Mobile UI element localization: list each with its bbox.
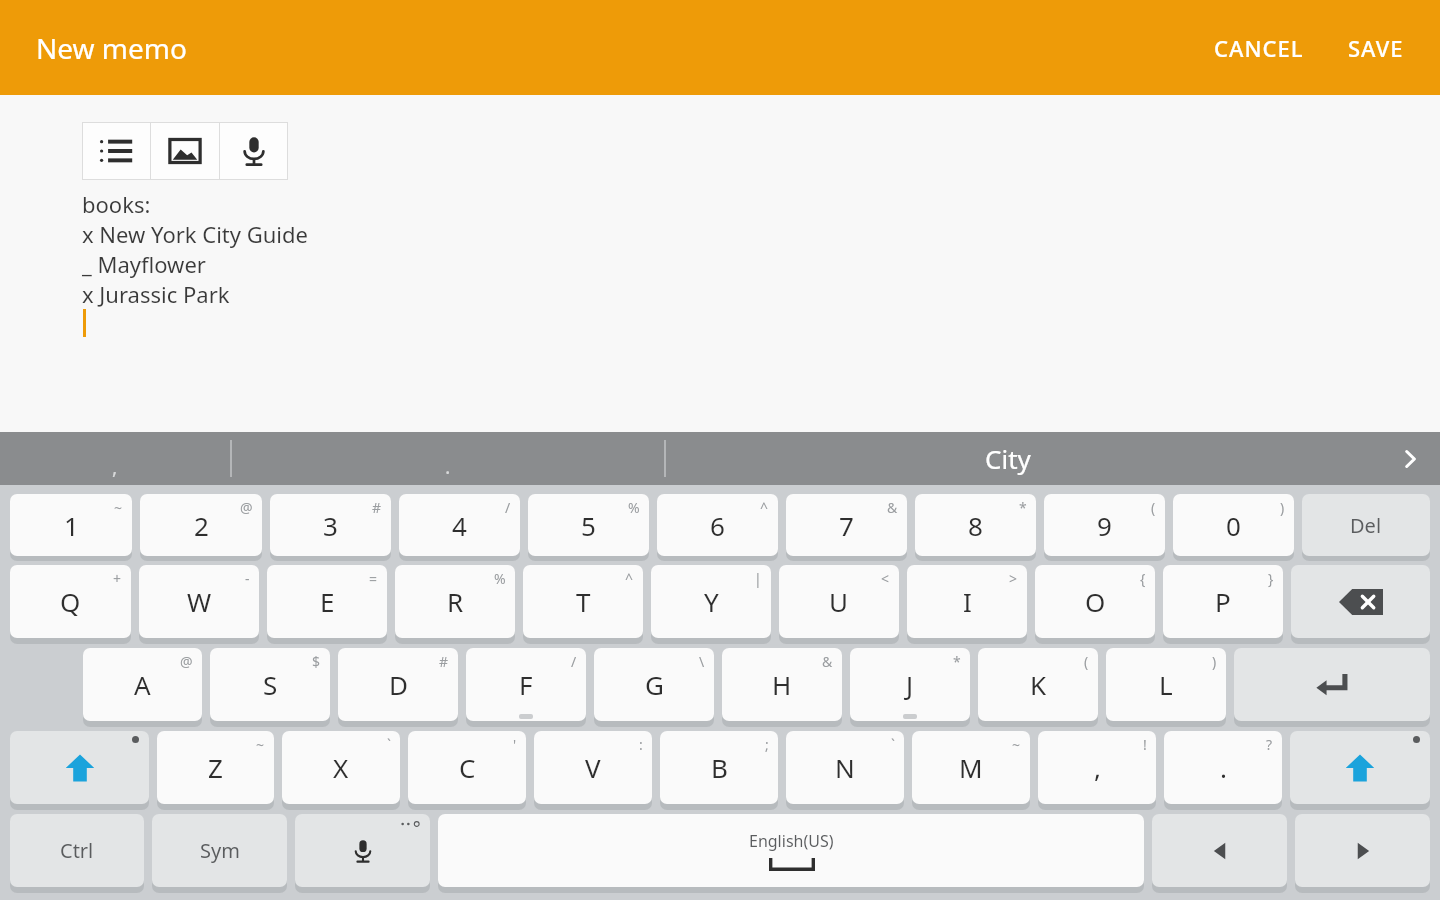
staticText: ; [765, 735, 769, 754]
staticText: S [263, 667, 278, 702]
staticText: x New York City Guide [82, 219, 308, 249]
button[interactable]: Shift [1290, 731, 1430, 804]
staticText: ` [891, 735, 895, 754]
button[interactable]: 5 [528, 494, 649, 556]
button[interactable]: 1 [10, 494, 132, 556]
button[interactable]: Ctrl [10, 814, 144, 887]
button[interactable]: J [850, 648, 970, 721]
button[interactable]: L [1106, 648, 1226, 721]
staticText: Sym [200, 837, 240, 864]
button[interactable]: Del [1302, 494, 1430, 556]
button[interactable]: Move left [1152, 814, 1287, 887]
staticText: % [494, 569, 506, 588]
button[interactable]: T [523, 565, 643, 638]
staticText: J [906, 667, 914, 702]
staticText: H [772, 667, 792, 702]
button[interactable]: G [594, 648, 714, 721]
button[interactable]: Sym [152, 814, 287, 887]
staticText: M [959, 750, 983, 785]
button[interactable]: Backspace [1291, 565, 1430, 638]
button[interactable]: R [395, 565, 515, 638]
staticText: W [187, 584, 212, 619]
staticText: ! [1143, 735, 1147, 754]
staticText: ? [1266, 735, 1273, 754]
button[interactable]: Y [651, 565, 771, 638]
button[interactable]: X [282, 731, 400, 804]
button[interactable]: B [660, 731, 778, 804]
staticText: ~ [114, 498, 123, 517]
staticText: 2 [194, 508, 209, 543]
button[interactable]: C [408, 731, 526, 804]
staticText: Del [1350, 512, 1382, 539]
staticText: | [754, 569, 762, 588]
button[interactable]: 8 [915, 494, 1036, 556]
staticText: ~ [1012, 735, 1021, 754]
button[interactable]: D [338, 648, 458, 721]
staticText: 8 [968, 508, 983, 543]
button[interactable]: N [786, 731, 904, 804]
button[interactable]: Space [438, 814, 1144, 887]
button[interactable]: , [1038, 731, 1156, 804]
button[interactable]: P [1163, 565, 1283, 638]
staticText: I [963, 584, 972, 619]
button[interactable]: 9 [1044, 494, 1165, 556]
button[interactable]: H [722, 648, 842, 721]
staticText: ~ [256, 735, 265, 754]
staticText: - [245, 569, 250, 588]
button[interactable]: . [1164, 731, 1282, 804]
button[interactable]: Voice input [295, 814, 430, 887]
button[interactable]: F [466, 648, 586, 721]
button[interactable]: O [1035, 565, 1155, 638]
button[interactable]: Move right [1295, 814, 1430, 887]
button[interactable]: Voice input [220, 122, 288, 180]
button[interactable]: More suggestions [1380, 432, 1440, 485]
button[interactable]: CANCEL [1198, 21, 1320, 75]
staticText: , [1094, 750, 1101, 785]
staticText: . [445, 453, 451, 480]
staticText: ( [1084, 652, 1089, 671]
button[interactable]: City [666, 432, 1440, 485]
button[interactable]: Bulleted list [82, 122, 150, 180]
button[interactable]: Insert image [151, 122, 219, 180]
button[interactable]: 3 [270, 494, 391, 556]
staticText: O [1085, 584, 1106, 619]
button[interactable]: V [534, 731, 652, 804]
button[interactable]: E [267, 565, 387, 638]
button[interactable]: 2 [140, 494, 262, 556]
staticText: 4 [452, 508, 467, 543]
button[interactable]: Enter [1234, 648, 1430, 721]
staticText: 6 [710, 508, 725, 543]
button[interactable]: 4 [399, 494, 520, 556]
button[interactable]: 6 [657, 494, 778, 556]
button[interactable]: W [139, 565, 259, 638]
button[interactable]: Shift [10, 731, 149, 804]
button[interactable]: Z [157, 731, 274, 804]
staticText: @ [180, 652, 193, 671]
staticText: / [571, 652, 577, 671]
button[interactable]: U [779, 565, 899, 638]
staticText: > [1009, 569, 1018, 588]
button[interactable]: S [210, 648, 330, 721]
staticText: 3 [323, 508, 338, 543]
staticText: ) [1212, 652, 1217, 671]
staticText: P [1215, 584, 1231, 619]
button[interactable]: I [907, 565, 1027, 638]
button[interactable]: SAVE [1332, 21, 1420, 75]
button[interactable]: K [978, 648, 1098, 721]
button[interactable]: M [912, 731, 1030, 804]
staticText: Q [60, 584, 81, 619]
button[interactable]: A [83, 648, 202, 721]
staticText: V [585, 750, 601, 785]
button[interactable]: 0 [1173, 494, 1294, 556]
button[interactable]: Q [10, 565, 131, 638]
staticText: A [134, 667, 151, 702]
button[interactable]: 7 [786, 494, 907, 556]
staticText: ` [387, 735, 391, 754]
staticText: B [711, 750, 728, 785]
staticText: Y [704, 584, 719, 619]
staticText: ) [1280, 498, 1285, 517]
staticText: D [389, 667, 408, 702]
staticText: F [519, 667, 533, 702]
